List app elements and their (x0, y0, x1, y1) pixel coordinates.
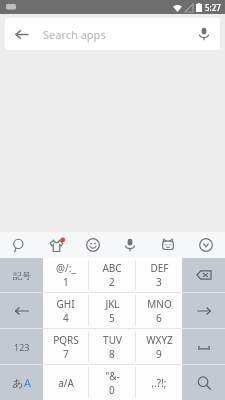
staticText: あ (12, 376, 24, 390)
button[interactable]: Voice input (117, 232, 143, 258)
button[interactable]: ABC (89, 258, 135, 292)
staticText: @/:_ (56, 261, 76, 275)
button[interactable]: GHI (43, 293, 88, 328)
staticText: A (24, 375, 32, 390)
button[interactable]: Back (5, 18, 220, 50)
button[interactable]: "&- (89, 365, 135, 400)
button[interactable]: Move cursor right (182, 293, 225, 328)
staticText: "&- (105, 369, 120, 383)
staticText: MNO (147, 297, 172, 311)
other: Move cursor left (0, 293, 43, 328)
staticText: 9 (156, 347, 162, 361)
staticText: ABC (102, 261, 122, 275)
staticText: JKL (105, 297, 120, 311)
staticText: GHI (56, 297, 75, 311)
button[interactable]: ,.?!; (136, 365, 182, 400)
button[interactable]: Voice search (188, 18, 220, 50)
button[interactable]: 123 (0, 329, 43, 364)
button[interactable]: Stickers (155, 232, 181, 258)
button[interactable]: Search conversion (6, 232, 32, 258)
button[interactable]: MNO (136, 293, 182, 328)
other: Move cursor right (182, 293, 225, 328)
staticText: 3 (156, 275, 162, 289)
button[interactable]: a/A (43, 365, 88, 400)
staticText: DEF (150, 261, 169, 275)
button[interactable]: Emoji (80, 232, 106, 258)
staticText: TUV (103, 333, 122, 347)
button[interactable]: Backspace (182, 258, 225, 292)
button[interactable]: Space (182, 329, 225, 364)
button[interactable]: あ (0, 365, 43, 400)
staticText: 8 (109, 347, 115, 361)
button[interactable]: PQRS (43, 329, 88, 364)
staticText: 123 (14, 341, 30, 353)
staticText: PQRS (53, 333, 79, 347)
other: Backspace (182, 258, 225, 292)
button[interactable]: 記号 (0, 258, 43, 292)
staticText: 2 (109, 275, 115, 289)
button[interactable]: Back (5, 18, 37, 50)
button[interactable]: Themes (43, 232, 69, 258)
other: Search (182, 365, 225, 400)
staticText: WXYZ (146, 333, 173, 347)
staticText: 0 (109, 383, 115, 397)
staticText: ,.?!; (151, 376, 167, 390)
staticText: 1 (63, 275, 69, 289)
other: Space (182, 329, 225, 364)
button[interactable]: Search (182, 365, 225, 400)
button[interactable]: Collapse (193, 232, 219, 258)
staticText: 記号 (13, 270, 31, 281)
staticText: a/A (58, 376, 74, 390)
button[interactable]: TUV (89, 329, 135, 364)
button[interactable]: DEF (136, 258, 182, 292)
staticText: 7 (63, 347, 69, 361)
button[interactable]: JKL (89, 293, 135, 328)
button[interactable]: @/:_ (43, 258, 88, 292)
staticText: 5 (109, 311, 115, 325)
staticText: 4 (63, 311, 69, 325)
staticText: 6 (156, 311, 162, 325)
button[interactable]: WXYZ (136, 329, 182, 364)
staticText: 5:27 (205, 2, 221, 13)
staticText: Search apps (43, 27, 188, 42)
button[interactable]: Move cursor left (0, 293, 43, 328)
